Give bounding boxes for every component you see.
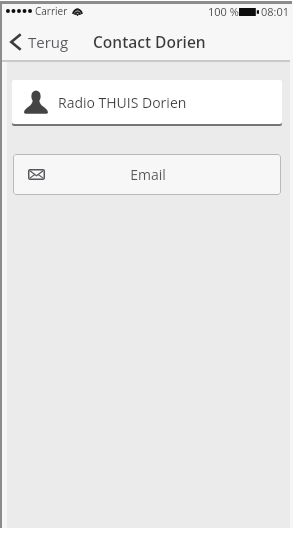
staticText: 100 % <box>208 4 239 19</box>
button[interactable]: Radio THUIS Dorien <box>12 80 282 124</box>
staticText: 08:01 <box>261 4 290 19</box>
staticText: Contact Dorien <box>93 31 206 52</box>
staticText: Radio THUIS Dorien <box>58 93 187 112</box>
other: Email <box>28 169 45 180</box>
button[interactable]: Terug <box>2 21 79 62</box>
staticText: Terug <box>28 32 69 52</box>
staticText: Email <box>130 165 166 184</box>
button[interactable]: Email <box>13 154 281 195</box>
staticText: Carrier <box>35 4 68 18</box>
